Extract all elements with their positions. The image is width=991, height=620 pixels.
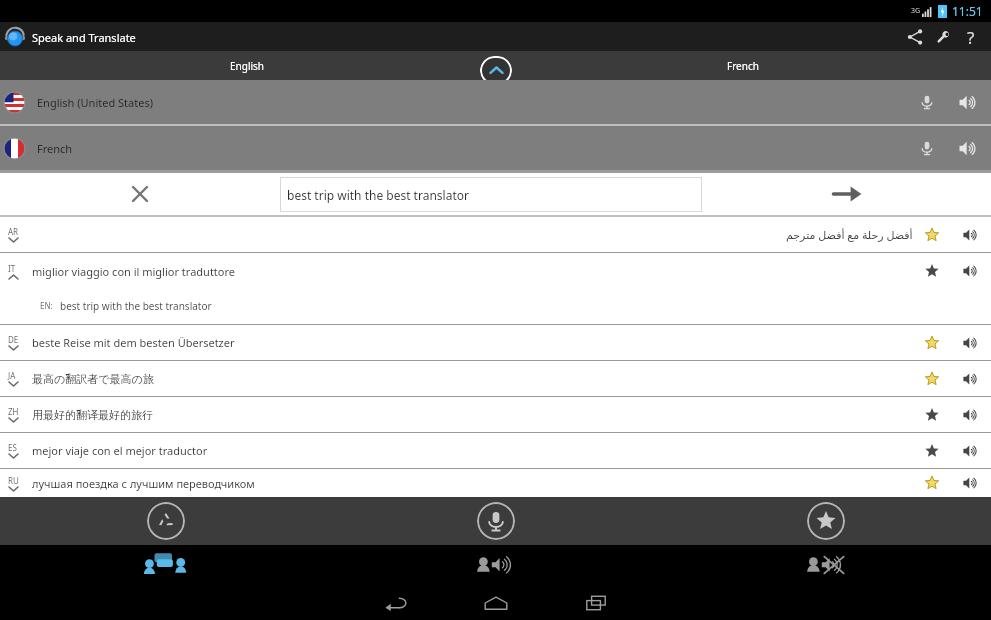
button[interactable]: Settings — [929, 23, 957, 51]
button[interactable]: Home — [446, 585, 546, 620]
button[interactable]: Favorite — [913, 217, 951, 252]
staticText: beste Reise mit dem besten Übersetzer — [32, 335, 235, 350]
button[interactable]: Clear all — [147, 502, 185, 540]
button[interactable]: Favorite — [913, 253, 951, 289]
button[interactable]: AR — [0, 217, 991, 252]
staticText: 最高の翻訳者で最高の旅 — [32, 372, 154, 386]
staticText: 3G — [911, 6, 921, 16]
button[interactable]: Share — [901, 23, 929, 51]
button[interactable]: Speak — [951, 217, 989, 252]
button[interactable]: Microphone — [907, 128, 947, 168]
button[interactable]: Favorite — [913, 397, 951, 432]
button[interactable]: Recents — [546, 585, 646, 620]
button[interactable]: Collapse — [480, 56, 512, 85]
button[interactable]: ZH — [0, 397, 991, 432]
button[interactable]: Speak — [951, 433, 989, 468]
button[interactable]: Help — [957, 23, 985, 51]
staticText: best trip with the best translator — [60, 299, 212, 313]
button[interactable]: Favorite — [913, 325, 951, 360]
button[interactable]: Speak mode — [467, 548, 525, 582]
staticText: EN: — [40, 300, 53, 311]
button[interactable]: Back — [346, 585, 446, 620]
staticText: English — [230, 59, 265, 73]
staticText: JA — [8, 370, 16, 381]
button[interactable]: Clear — [0, 173, 280, 215]
button[interactable]: Favorite — [913, 361, 951, 396]
staticText: лучшая поездка с лучшим переводчиком — [32, 476, 255, 491]
staticText: French — [37, 141, 73, 156]
button[interactable]: Mute mode — [797, 548, 855, 582]
staticText: ES — [8, 442, 17, 453]
button[interactable]: Favorite — [913, 469, 951, 497]
staticText: miglior viaggio con il miglior traduttor… — [32, 264, 236, 279]
button[interactable]: Speak — [951, 361, 989, 396]
staticText: RU — [8, 475, 19, 486]
button[interactable]: French — [495, 51, 991, 80]
button[interactable]: best trip with the best translator — [280, 177, 702, 212]
staticText: mejor viaje con el mejor traductor — [32, 443, 208, 458]
staticText: Speak and Translate — [32, 30, 136, 45]
staticText: 用最好的翻译最好的旅行 — [32, 408, 153, 422]
staticText: French — [727, 59, 759, 73]
button[interactable]: JA — [0, 361, 991, 396]
button[interactable]: English (United States) — [0, 80, 991, 124]
button[interactable]: Conversation — [137, 548, 195, 582]
staticText: English (United States) — [37, 95, 153, 110]
button[interactable]: RU — [0, 469, 991, 497]
button[interactable]: Favorite — [913, 433, 951, 468]
button[interactable]: French — [0, 126, 991, 170]
staticText: IT — [8, 263, 16, 274]
button[interactable]: Microphone — [907, 82, 947, 122]
staticText: ZH — [8, 406, 19, 417]
staticText: ? — [967, 26, 975, 49]
button[interactable]: Speak — [951, 325, 989, 360]
staticText: best trip with the best translator — [287, 187, 469, 203]
button[interactable]: Translate — [702, 173, 991, 215]
button[interactable]: Favorites — [807, 502, 845, 540]
button[interactable]: Speak — [951, 469, 989, 497]
button[interactable]: Speak — [947, 82, 987, 122]
staticText: أفضل رحلة مع أفضل مترجم — [786, 227, 913, 242]
button[interactable]: English — [0, 51, 495, 80]
button[interactable]: Speak — [947, 128, 987, 168]
button[interactable]: Speak — [951, 397, 989, 432]
button[interactable]: Speak — [951, 253, 989, 289]
staticText: AR — [8, 226, 19, 237]
button[interactable]: Record — [477, 502, 515, 540]
staticText: DE — [8, 334, 19, 345]
button[interactable]: ES — [0, 433, 991, 468]
staticText: 11:51 — [952, 3, 983, 19]
button[interactable]: IT — [0, 253, 991, 324]
button[interactable]: DE — [0, 325, 991, 360]
